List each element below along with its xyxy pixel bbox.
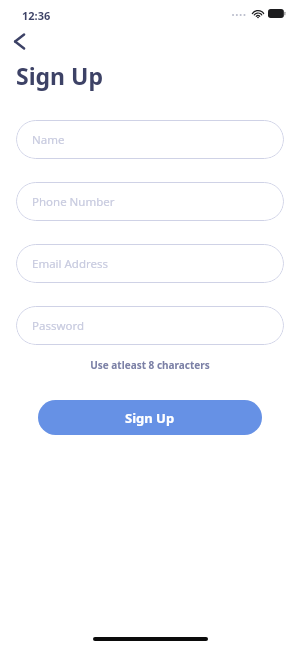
button[interactable]: Back bbox=[4, 26, 34, 56]
button[interactable]: Name bbox=[16, 120, 284, 159]
staticText: Use atleast 8 characters bbox=[0, 358, 300, 372]
button[interactable]: Sign Up bbox=[38, 400, 262, 435]
button[interactable]: Phone Number bbox=[16, 182, 284, 221]
button[interactable]: Email Address bbox=[16, 244, 284, 283]
staticText: Sign Up bbox=[16, 60, 103, 91]
staticText: Name bbox=[32, 132, 65, 148]
staticText: 12:36 bbox=[22, 8, 51, 23]
staticText: Sign Up bbox=[125, 409, 175, 427]
button[interactable]: Password bbox=[16, 306, 284, 345]
staticText: Phone Number bbox=[32, 194, 115, 210]
staticText: Email Address bbox=[32, 256, 109, 272]
staticText: Password bbox=[32, 318, 85, 334]
